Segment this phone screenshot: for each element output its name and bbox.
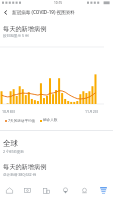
staticText: 每天的新增病例 [3,163,47,171]
button[interactable]: Photos [18,180,37,200]
button[interactable]: Updates [94,180,113,200]
staticText: 7天的滚动平均值 [8,118,36,123]
staticText: 每天的新增病例 [3,25,47,33]
staticText: 全球 [3,139,19,149]
button[interactable]: Explore [0,180,18,200]
staticText: 新冠病毒 (COVID-19) 视图资料 [12,9,75,15]
button[interactable]: Notifications [75,180,94,200]
staticText: 11月2日 [85,109,99,114]
button[interactable]: Places [37,180,56,200]
staticText: 10月8日 [2,109,16,114]
staticText: 10:15 [54,1,63,5]
staticText: 确诊人数 [43,118,58,123]
button[interactable]: Contribute [56,180,75,200]
button[interactable]: Back [0,7,11,18]
staticText: 2 小时前更新 [3,149,24,154]
staticText: 总计新增 380,632 例 [3,172,37,177]
staticText: 按日期显示 5 例 [3,33,29,38]
